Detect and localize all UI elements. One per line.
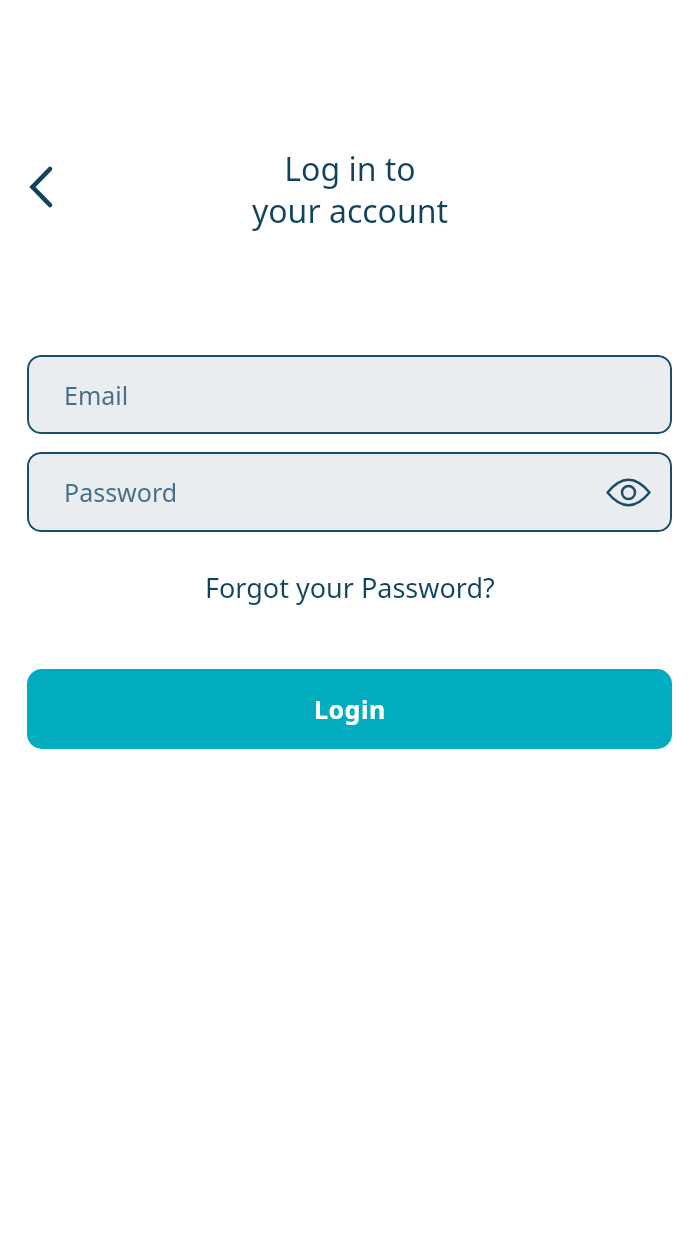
staticText: Password — [64, 475, 178, 509]
staticText: Forgot your Password? — [205, 569, 495, 606]
staticText: Login — [314, 692, 386, 726]
button[interactable] — [605, 477, 651, 507]
button[interactable]: Forgot your Password? — [197, 565, 503, 610]
button[interactable]: Email — [27, 355, 672, 434]
button[interactable] — [20, 158, 60, 216]
staticText: Email — [64, 378, 129, 412]
button[interactable]: Login — [27, 669, 672, 749]
button[interactable]: Password — [27, 452, 672, 532]
staticText: Log in to your account — [0, 147, 700, 232]
